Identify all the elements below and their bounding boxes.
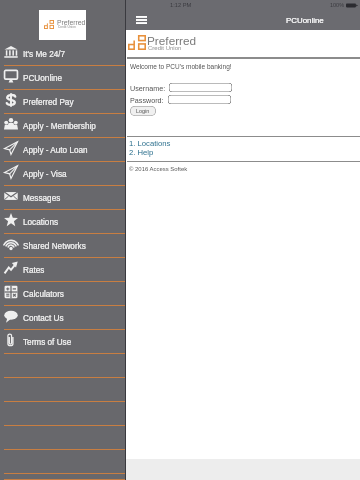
button[interactable]: Open navigation menu (133, 14, 149, 26)
staticText: Login (136, 108, 150, 114)
staticText: Username: (130, 84, 166, 92)
staticText: 100% (330, 2, 345, 8)
button[interactable] (169, 83, 232, 92)
staticText: Welcome to PCU's mobile banking! (130, 63, 232, 70)
button[interactable]: 1. Locations (129, 139, 171, 148)
button[interactable]: Login (130, 106, 156, 116)
staticText: 1:12 PM (170, 2, 192, 8)
staticText: Preferred Pay (23, 98, 74, 107)
button[interactable]: Shared Networks (0, 234, 126, 258)
staticText: It's Me 24/7 (23, 50, 66, 59)
staticText: Messages (23, 194, 61, 203)
staticText: Contact Us (23, 314, 64, 323)
staticText: Apply - Membership (23, 122, 96, 131)
staticText: Locations (23, 218, 59, 227)
button[interactable]: Apply - Auto Loan (0, 138, 126, 162)
button[interactable]: 2. Help (129, 148, 154, 157)
staticText: © 2016 Access Softek (129, 166, 188, 173)
button[interactable]: Rates (0, 258, 126, 282)
button[interactable]: Locations (0, 210, 126, 234)
staticText: Terms of Use (23, 338, 72, 347)
staticText: Apply - Auto Loan (23, 146, 88, 155)
button[interactable]: Preferred Pay (0, 90, 126, 114)
staticText: Calculators (23, 290, 64, 299)
button[interactable]: Contact Us (0, 306, 126, 330)
staticText: Rates (23, 266, 45, 275)
staticText: Shared Networks (23, 242, 86, 251)
button[interactable]: Apply - Visa (0, 162, 126, 186)
staticText: PCUonline (23, 74, 63, 83)
staticText: Preferred (147, 34, 197, 47)
button[interactable]: Calculators (0, 282, 126, 306)
button[interactable]: It's Me 24/7 (0, 42, 126, 66)
staticText: Apply - Visa (23, 170, 67, 179)
button[interactable] (168, 95, 231, 104)
staticText: Preferred (57, 19, 86, 27)
button[interactable]: Apply - Membership (0, 114, 126, 138)
button[interactable]: Terms of Use (0, 330, 126, 354)
button[interactable]: PCUonline (0, 66, 126, 90)
staticText: Password: (130, 96, 164, 104)
staticText: Credit Union (58, 25, 76, 29)
button[interactable]: Messages (0, 186, 126, 210)
staticText: Credit Union (148, 45, 182, 52)
staticText: PCUonline (286, 16, 324, 25)
